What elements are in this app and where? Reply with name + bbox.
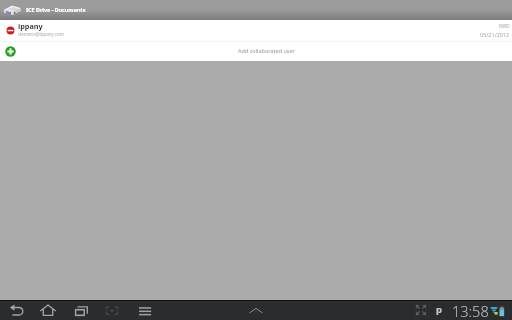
staticText: RWD bbox=[499, 23, 510, 29]
button[interactable]: Remove collaborator bbox=[1, 21, 20, 40]
button[interactable]: Screenshot bbox=[103, 301, 121, 319]
button[interactable]: Menu bbox=[136, 301, 154, 319]
staticText: p bbox=[436, 303, 443, 316]
staticText: 05/21/2012 bbox=[480, 31, 510, 38]
button[interactable]: Notifications bbox=[247, 301, 265, 319]
button[interactable]: Back bbox=[8, 301, 26, 319]
button[interactable]: Add collaborated user bbox=[1, 42, 20, 61]
staticText: ippany bbox=[18, 21, 43, 31]
button[interactable]: Add collaborated user bbox=[0, 42, 512, 61]
button[interactable]: Fullscreen bbox=[412, 301, 430, 319]
button[interactable]: Home bbox=[39, 301, 57, 319]
staticText: 13:58 bbox=[452, 301, 489, 320]
button[interactable]: ICE Drive - Documents bbox=[0, 0, 512, 20]
button[interactable]: Remove collaborator bbox=[0, 20, 512, 41]
staticText: clemens@ippany.com bbox=[18, 31, 64, 37]
staticText: ICE Drive - Documents bbox=[26, 6, 86, 13]
staticText: Add collaborated user bbox=[238, 47, 295, 54]
button[interactable]: Recents bbox=[72, 301, 90, 319]
